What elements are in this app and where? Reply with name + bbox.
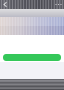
button[interactable]: Back [0,0,11,9]
button[interactable]: More [53,0,64,9]
button[interactable] [0,54,64,61]
